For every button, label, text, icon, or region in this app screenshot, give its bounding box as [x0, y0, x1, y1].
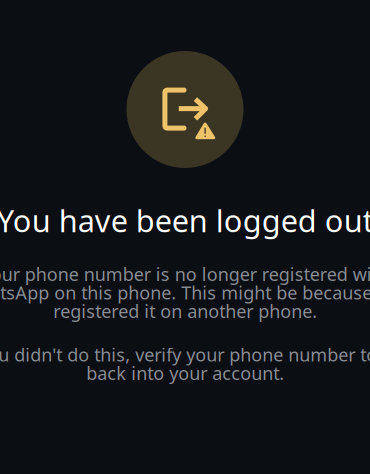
staticText: back into your account. [86, 361, 284, 385]
staticText: You have been logged out [0, 200, 370, 241]
staticText: WhatsApp on this phone. This might be be… [0, 280, 370, 305]
staticText: registered it on another phone. [53, 299, 317, 323]
staticText: If you didn't do this, verify your phone… [0, 342, 370, 367]
staticText: Your phone number is no longer registere… [0, 262, 370, 286]
